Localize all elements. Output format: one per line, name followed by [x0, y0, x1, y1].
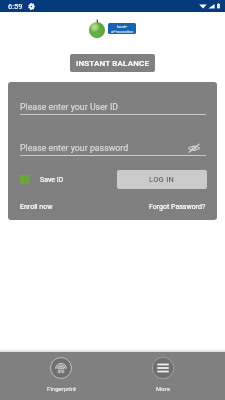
staticText: Fingerprint — [47, 385, 76, 392]
button[interactable]: LOG IN — [117, 170, 207, 189]
staticText: bank• — [117, 24, 128, 29]
staticText: More — [156, 385, 170, 392]
button[interactable]: More options — [138, 357, 188, 392]
other: More options — [152, 357, 174, 379]
button[interactable]: INSTANT BALANCE — [70, 54, 155, 72]
staticText: Please enter your User ID — [20, 102, 119, 112]
other: Show password — [187, 143, 201, 153]
other: Settings — [28, 3, 35, 10]
staticText: Save ID — [40, 176, 64, 184]
staticText: LOG IN — [149, 175, 175, 184]
button[interactable]: Please enter your User ID — [20, 102, 206, 115]
staticText: Please enter your password — [20, 143, 129, 153]
staticText: 6:59 — [8, 2, 23, 11]
button[interactable]: Fingerprint login — [36, 357, 86, 392]
button[interactable]: Save ID — [20, 175, 64, 184]
other: Fingerprint login — [50, 357, 72, 379]
staticText: INSTANT BALANCE — [76, 59, 150, 68]
button[interactable]: Please enter your password — [20, 143, 206, 156]
button[interactable]: Enroll now — [20, 203, 53, 211]
staticText: of•innovation — [111, 29, 134, 33]
button[interactable]: Forgot Password? — [149, 203, 206, 211]
